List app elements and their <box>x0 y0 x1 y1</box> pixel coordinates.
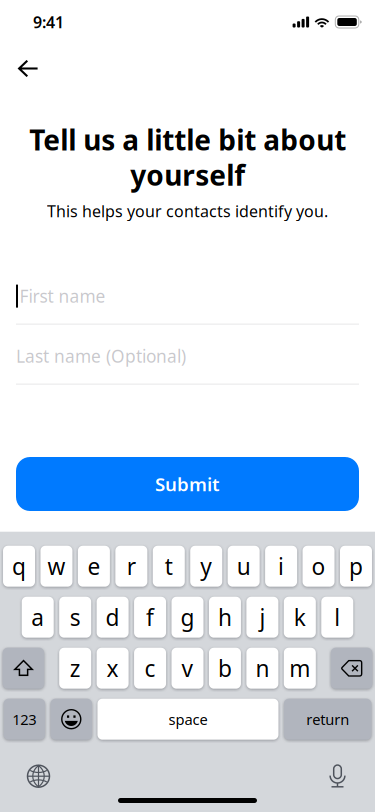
button[interactable]: s <box>59 597 91 638</box>
staticText: g <box>180 602 194 632</box>
button[interactable]: q <box>3 546 35 587</box>
button[interactable]: w <box>40 546 72 587</box>
button[interactable]: u <box>228 546 260 587</box>
staticText: s <box>70 602 81 632</box>
staticText: o <box>311 551 325 581</box>
staticText: f <box>146 602 154 632</box>
staticText: w <box>47 551 65 581</box>
staticText: 9:41 <box>33 11 64 33</box>
button[interactable]: Last name (Optional) <box>0 341 375 385</box>
staticText: v <box>181 653 193 683</box>
button[interactable]: e <box>78 546 110 587</box>
button[interactable]: o <box>302 546 334 587</box>
staticText: j <box>259 602 265 632</box>
staticText: x <box>107 653 119 683</box>
staticText: space <box>168 709 207 729</box>
staticText: d <box>106 602 120 632</box>
button[interactable]: b <box>209 648 241 689</box>
staticText: y <box>200 551 212 581</box>
staticText: 123 <box>12 709 36 729</box>
staticText: r <box>127 551 136 581</box>
staticText: t <box>165 551 173 581</box>
button[interactable]: x <box>97 648 129 689</box>
staticText: First name <box>20 285 106 308</box>
staticText: e <box>87 551 100 581</box>
button[interactable]: t <box>153 546 185 587</box>
staticText: a <box>31 602 44 632</box>
staticText: Tell us a little bit about yourself <box>29 121 346 193</box>
button[interactable]: n <box>246 648 278 689</box>
button[interactable]: First name <box>0 281 375 325</box>
staticText: b <box>218 653 232 683</box>
button[interactable]: Shift <box>3 648 44 689</box>
button[interactable]: 123 <box>4 699 45 740</box>
button[interactable]: z <box>59 648 91 689</box>
button[interactable]: d <box>97 597 129 638</box>
staticText: Submit <box>155 472 220 496</box>
staticText: return <box>306 709 349 729</box>
staticText: p <box>349 551 363 581</box>
button[interactable]: return <box>284 699 371 740</box>
button[interactable]: a <box>22 597 54 638</box>
button[interactable]: Next keyboard <box>27 765 50 788</box>
button[interactable]: p <box>340 546 372 587</box>
staticText: u <box>237 551 251 581</box>
button[interactable]: Dictation <box>329 765 346 788</box>
button[interactable]: k <box>284 597 316 638</box>
button[interactable]: i <box>265 546 297 587</box>
button[interactable]: r <box>115 546 147 587</box>
button[interactable]: f <box>134 597 166 638</box>
staticText: l <box>334 602 340 632</box>
staticText: Last name (Optional) <box>16 345 186 368</box>
staticText: h <box>218 602 232 632</box>
button[interactable]: Submit <box>16 457 359 511</box>
button[interactable]: Delete <box>331 648 372 689</box>
staticText: k <box>294 602 306 632</box>
staticText: q <box>12 551 26 581</box>
staticText: m <box>289 653 310 683</box>
staticText: z <box>70 653 81 683</box>
button[interactable]: j <box>246 597 278 638</box>
button[interactable]: m <box>284 648 316 689</box>
button[interactable]: Back <box>6 44 50 88</box>
staticText: c <box>145 653 156 683</box>
button[interactable]: h <box>209 597 241 638</box>
button[interactable]: y <box>190 546 222 587</box>
button[interactable]: l <box>321 597 353 638</box>
button[interactable]: space <box>97 699 278 740</box>
staticText: This helps your contacts identify you. <box>47 200 328 222</box>
button[interactable]: Emoji <box>50 699 92 740</box>
button[interactable]: g <box>171 597 203 638</box>
button[interactable]: v <box>171 648 203 689</box>
button[interactable]: c <box>134 648 166 689</box>
staticText: n <box>255 653 269 683</box>
staticText: i <box>278 551 284 581</box>
